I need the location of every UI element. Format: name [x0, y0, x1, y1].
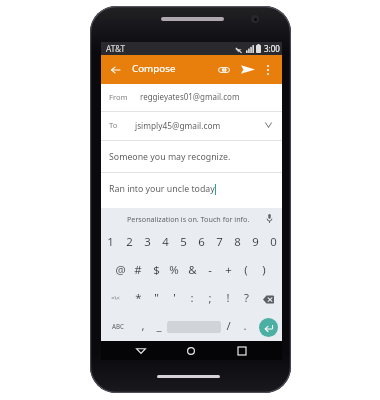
button[interactable]: 6 [192, 229, 210, 257]
staticText: To [109, 120, 118, 130]
button[interactable]: # [129, 257, 147, 285]
staticText: reggieyates01@gmail.com [140, 91, 240, 102]
staticText: Someone you may recognize. [109, 151, 231, 163]
staticText: + [225, 262, 232, 278]
staticText: % [169, 262, 179, 278]
staticText: 1 [107, 234, 114, 250]
staticText: Personalization is on. Touch for info. [127, 214, 250, 224]
staticText: 2 [126, 234, 133, 250]
staticText: / [226, 318, 231, 334]
button[interactable]: - [201, 257, 219, 285]
button[interactable]: Ran into your uncle today [101, 173, 282, 208]
button[interactable]: Back [105, 60, 125, 80]
button[interactable]: ' [165, 285, 183, 313]
button[interactable]: ) [255, 257, 273, 285]
staticText: " [154, 290, 159, 306]
button[interactable]: _ [151, 313, 167, 341]
staticText: ? [244, 290, 249, 306]
button[interactable]: ABC [101, 313, 135, 341]
button[interactable]: 7 [210, 229, 228, 257]
button[interactable]: " [147, 285, 165, 313]
button[interactable]: Recents [232, 341, 252, 360]
staticText: ) [262, 262, 266, 278]
staticText: =\< [111, 294, 120, 302]
button[interactable]: + [219, 257, 237, 285]
staticText: 6 [198, 234, 205, 250]
staticText: * [135, 290, 142, 306]
button[interactable]: 0 [264, 229, 282, 257]
button[interactable]: Back [131, 341, 151, 360]
staticText: 7 [216, 234, 223, 250]
button[interactable]: Enter [259, 318, 278, 337]
staticText: ! [226, 290, 230, 306]
staticText: jsimply45@gmail.com [135, 120, 221, 131]
staticText: ABC [112, 322, 124, 330]
button[interactable]: From [101, 84, 282, 111]
staticText: 3 [144, 234, 151, 250]
staticText: : [190, 290, 194, 306]
button[interactable]: ? [237, 285, 255, 313]
button[interactable]: , [135, 313, 151, 341]
button[interactable]: 9 [246, 229, 264, 257]
staticText: Ran into your uncle today [109, 183, 215, 195]
button[interactable]: $ [147, 257, 165, 285]
button[interactable]: Someone you may recognize. [101, 141, 282, 172]
button[interactable]: : [183, 285, 201, 313]
staticText: - [208, 262, 212, 278]
staticText: & [188, 262, 197, 278]
button[interactable]: Attach [214, 60, 233, 79]
button[interactable]: =\< [101, 285, 129, 313]
button[interactable]: . [235, 313, 255, 341]
staticText: Compose [132, 62, 176, 75]
button[interactable]: Home [181, 341, 201, 360]
staticText: 0 [270, 234, 277, 250]
staticText: @ [115, 262, 126, 278]
button[interactable]: 4 [156, 229, 174, 257]
button[interactable]: Voice input [264, 213, 275, 224]
button[interactable]: More options [259, 61, 277, 79]
button[interactable]: 5 [174, 229, 192, 257]
button[interactable]: % [165, 257, 183, 285]
staticText: , [141, 318, 145, 334]
staticText: $ [153, 262, 160, 278]
staticText: ' [173, 290, 176, 306]
button[interactable]: 8 [228, 229, 246, 257]
staticText: 8 [234, 234, 241, 250]
staticText: 3:00 [264, 43, 280, 54]
button[interactable]: 2 [120, 229, 138, 257]
button[interactable]: ; [201, 285, 219, 313]
staticText: # [134, 262, 142, 278]
staticText: AT&T [106, 43, 126, 54]
staticText: 5 [180, 234, 187, 250]
button[interactable]: @ [111, 257, 129, 285]
button[interactable]: 3 [138, 229, 156, 257]
button[interactable]: * [129, 285, 147, 313]
button[interactable]: Send [238, 60, 257, 79]
button[interactable]: Backspace [255, 285, 282, 313]
staticText: ; [208, 290, 212, 306]
button[interactable]: / [221, 313, 235, 341]
staticText: ( [244, 262, 248, 278]
staticText: From [109, 92, 128, 102]
button[interactable]: ! [219, 285, 237, 313]
button[interactable]: To [101, 112, 282, 140]
staticText: _ [156, 318, 162, 334]
button[interactable]: ( [237, 257, 255, 285]
button[interactable]: 1 [101, 229, 120, 257]
staticText: . [243, 318, 247, 334]
staticText: 9 [252, 234, 259, 250]
staticText: 4 [162, 234, 169, 250]
button[interactable]: & [183, 257, 201, 285]
